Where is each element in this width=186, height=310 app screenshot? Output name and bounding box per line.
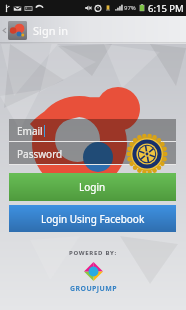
staticText: Sign in	[33, 23, 68, 38]
button[interactable]: Login Using Facebook	[9, 205, 176, 232]
staticText: GROUPJUMP	[70, 284, 117, 294]
button[interactable]: Login	[9, 173, 176, 201]
staticText: Email	[17, 124, 43, 138]
button[interactable]: Password	[9, 142, 176, 165]
button[interactable]: Email	[9, 119, 176, 142]
staticText: Password	[17, 147, 63, 161]
staticText: 97%	[124, 4, 136, 12]
staticText: POWERED BY:	[69, 249, 117, 257]
staticText: Login	[79, 180, 106, 194]
button[interactable]: Navigate up	[0, 16, 8, 44]
staticText: Login Using Facebook	[41, 212, 145, 226]
staticText: 6:15 PM	[148, 2, 184, 15]
